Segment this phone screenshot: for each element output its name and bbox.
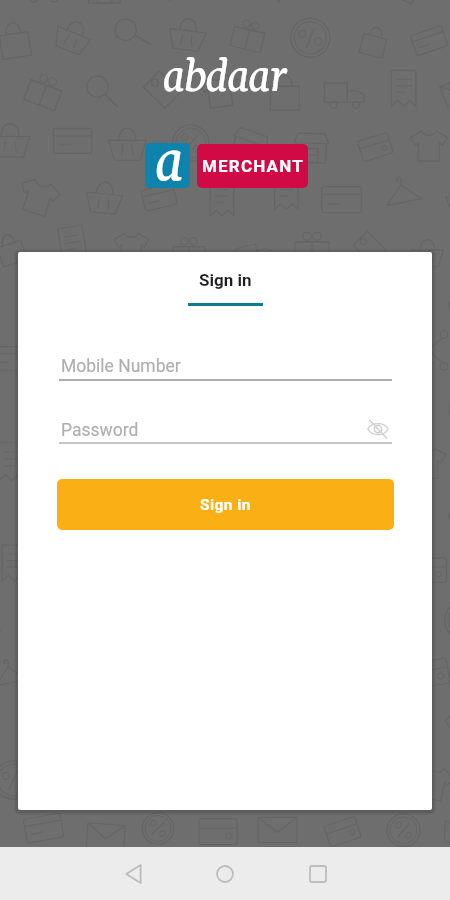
- staticText: a: [156, 143, 190, 188]
- button[interactable]: Password: [57, 412, 355, 442]
- staticText: Mobile Number: [61, 356, 181, 377]
- button[interactable]: Back: [105, 847, 165, 900]
- button[interactable]: Sign in: [57, 479, 394, 530]
- button[interactable]: Home: [195, 847, 255, 900]
- button[interactable]: Recents: [288, 847, 348, 900]
- staticText: Sign in: [200, 496, 251, 514]
- staticText: MERCHANT: [202, 156, 304, 176]
- button[interactable]: Show password: [357, 408, 399, 450]
- staticText: Password: [61, 420, 139, 441]
- staticText: Sign in: [199, 270, 252, 290]
- button[interactable]: Mobile Number: [57, 348, 394, 378]
- staticText: abdaar: [163, 36, 287, 103]
- button[interactable]: Sign in: [186, 252, 264, 306]
